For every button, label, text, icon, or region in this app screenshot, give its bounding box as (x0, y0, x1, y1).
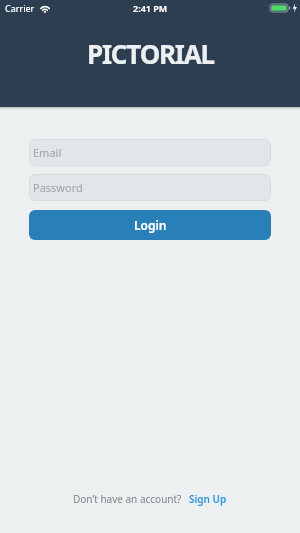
staticText: Login (134, 217, 167, 233)
button[interactable]: Email (29, 139, 271, 166)
button[interactable]: Don’t have an account? (73, 492, 227, 506)
staticText: Password (33, 180, 83, 195)
staticText: Sign Up (189, 492, 227, 506)
staticText: PICTORIAL (87, 36, 214, 71)
button[interactable]: Password (29, 174, 271, 201)
staticText: Don’t have an account? (73, 492, 182, 506)
button[interactable]: Login (29, 210, 271, 240)
staticText: Carrier (5, 2, 35, 14)
staticText: 2:41 PM (133, 2, 168, 14)
staticText: Email (33, 145, 62, 160)
